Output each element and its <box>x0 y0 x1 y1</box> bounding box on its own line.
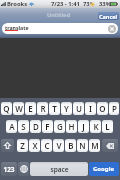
button[interactable]: T <box>49 102 60 115</box>
staticText: X <box>32 140 38 151</box>
staticText: Google <box>93 165 115 173</box>
staticText: G <box>57 121 63 132</box>
button[interactable]: Backspace <box>102 139 118 152</box>
button[interactable]: Shift <box>1 139 14 152</box>
button[interactable]: E <box>25 102 36 115</box>
staticText: C <box>44 140 50 151</box>
button[interactable]: Y <box>61 102 72 115</box>
button[interactable]: Cancel <box>98 12 119 20</box>
staticText: 7/23 - 1:41 <box>51 0 80 8</box>
staticText: L <box>105 121 110 132</box>
staticText: K <box>93 121 99 132</box>
button[interactable]: L <box>102 120 113 133</box>
button[interactable]: R <box>37 102 48 115</box>
staticText: M <box>91 140 99 151</box>
staticText: P <box>112 103 117 114</box>
staticText: Z <box>20 140 25 151</box>
button[interactable]: I <box>85 102 96 115</box>
staticText: Y <box>64 103 69 114</box>
button[interactable]: 123 <box>1 162 17 176</box>
staticText: S <box>21 121 26 132</box>
staticText: V <box>56 140 62 151</box>
staticText: Cancel <box>99 13 118 20</box>
staticText: E <box>28 103 33 114</box>
staticText: space <box>50 165 69 174</box>
staticText: N <box>79 140 86 151</box>
button[interactable]: W <box>13 102 24 115</box>
button[interactable]: V <box>53 139 64 152</box>
staticText: J <box>82 121 85 132</box>
button[interactable]: M <box>89 139 100 152</box>
button[interactable]: A <box>6 120 17 133</box>
staticText: Q <box>3 103 10 114</box>
button[interactable]: U <box>73 102 84 115</box>
staticText: D <box>33 121 39 132</box>
staticText: T <box>52 103 57 114</box>
staticText: 123 <box>3 165 15 174</box>
staticText: A <box>9 121 15 132</box>
staticText: translate <box>5 24 29 31</box>
staticText: Untitled <box>47 11 70 19</box>
button[interactable]: K <box>90 120 101 133</box>
staticText: I <box>89 103 92 114</box>
button[interactable]: J <box>78 120 89 133</box>
staticText: 33% <box>99 0 111 8</box>
staticText: F <box>45 121 50 132</box>
button[interactable]: G <box>54 120 65 133</box>
button[interactable]: O <box>97 102 108 115</box>
button[interactable]: F <box>42 120 53 133</box>
button[interactable]: Q <box>1 102 12 115</box>
button[interactable]: X <box>29 139 40 152</box>
button[interactable]: translate <box>2 23 118 34</box>
staticText: O <box>99 103 106 114</box>
staticText: U <box>76 103 82 114</box>
staticText: R <box>40 103 46 114</box>
staticText: 73° <box>83 0 93 8</box>
staticText: H <box>68 121 75 132</box>
staticText: Brooks <box>7 0 28 8</box>
button[interactable]: S <box>18 120 29 133</box>
button[interactable]: P <box>109 102 119 115</box>
button[interactable]: B <box>65 139 76 152</box>
button[interactable]: Clear text <box>108 25 116 33</box>
button[interactable]: C <box>41 139 52 152</box>
button[interactable]: space <box>30 162 88 176</box>
staticText: W <box>15 103 23 114</box>
button[interactable]: H <box>66 120 77 133</box>
button[interactable]: N <box>77 139 88 152</box>
button[interactable]: Globe <box>18 162 29 176</box>
button[interactable]: D <box>30 120 41 133</box>
staticText: B <box>68 140 74 151</box>
button[interactable]: Z <box>17 139 28 152</box>
button[interactable]: Google <box>89 162 119 176</box>
